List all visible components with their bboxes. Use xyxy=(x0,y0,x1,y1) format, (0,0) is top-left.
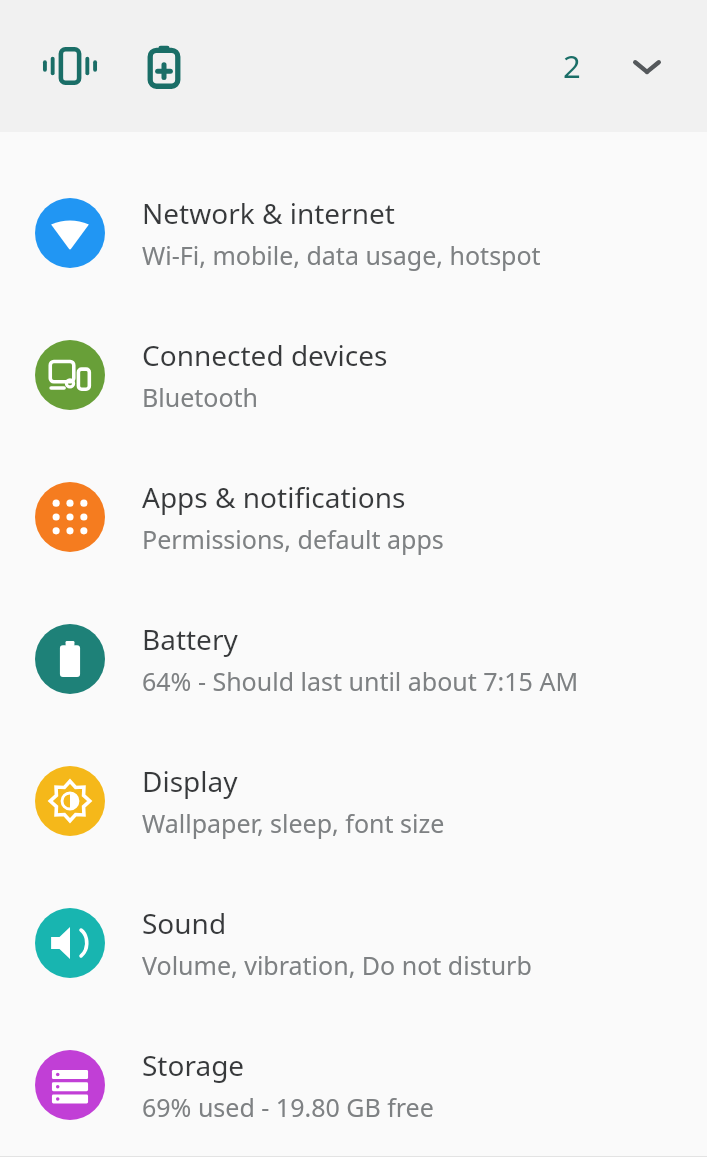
staticText: Wallpaper, sleep, font size xyxy=(142,806,445,840)
button[interactable]: Apps & notifications xyxy=(0,446,707,588)
button[interactable]: 2 xyxy=(543,28,601,104)
button[interactable]: Vibrate xyxy=(32,28,108,104)
staticText: Volume, vibration, Do not disturb xyxy=(142,948,532,982)
staticText: Display xyxy=(142,762,238,800)
staticText: 64% - Should last until about 7:15 AM xyxy=(142,664,579,698)
button[interactable]: Storage xyxy=(0,1014,707,1156)
button[interactable]: Connected devices xyxy=(0,304,707,446)
button[interactable]: Battery saver xyxy=(126,28,202,104)
staticText: Wi-Fi, mobile, data usage, hotspot xyxy=(142,238,541,272)
button[interactable]: Expand quick settings xyxy=(609,28,685,104)
button[interactable]: Display xyxy=(0,730,707,872)
staticText: Apps & notifications xyxy=(142,478,406,516)
staticText: Permissions, default apps xyxy=(142,522,444,556)
staticText: Bluetooth xyxy=(142,380,259,414)
button[interactable]: Battery xyxy=(0,588,707,730)
staticText: Battery xyxy=(142,620,238,658)
staticText: Storage xyxy=(142,1046,245,1084)
staticText: 2 xyxy=(563,45,581,87)
button[interactable]: Sound xyxy=(0,872,707,1014)
staticText: Sound xyxy=(142,904,227,942)
staticText: Connected devices xyxy=(142,336,388,374)
button[interactable]: Network & internet xyxy=(0,162,707,304)
staticText: 69% used - 19.80 GB free xyxy=(142,1090,434,1124)
staticText: Network & internet xyxy=(142,194,395,232)
